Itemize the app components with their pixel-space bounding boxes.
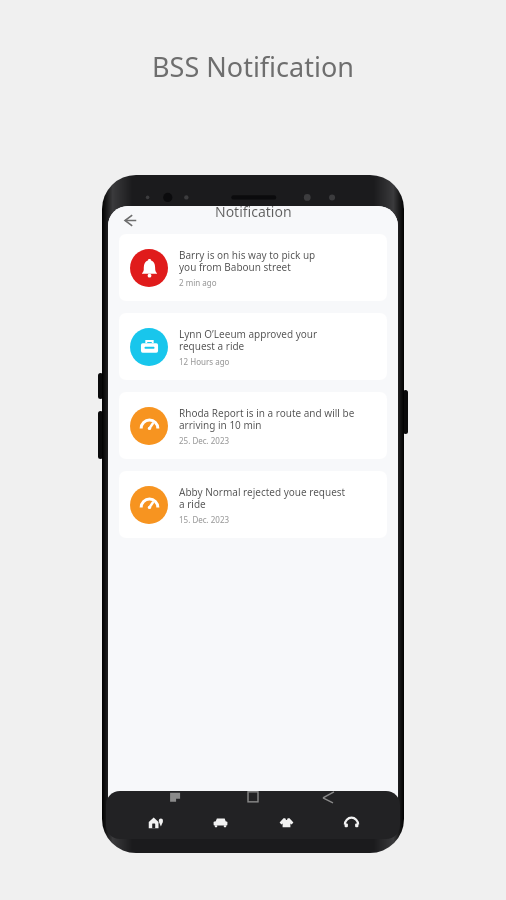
staticText: Abby Normal rejected youe request a ride [179,485,346,511]
button[interactable]: Abby Normal rejected youe request a ride [119,471,387,538]
staticText: 2 min ago [179,277,217,288]
staticText: Notification [215,206,292,221]
button[interactable]: Laundry [269,805,303,839]
button[interactable]: Lynn O’Leeum approved your request a rid… [119,313,387,380]
staticText: 15. Dec. 2023 [179,514,230,525]
staticText: BSS Notification [152,48,354,85]
button[interactable]: Support [334,805,368,839]
button[interactable]: Rides [203,805,237,839]
button[interactable]: Back [116,207,142,233]
button[interactable]: Barry is on his way to pick up you from … [119,234,387,301]
staticText: Barry is on his way to pick up you from … [179,248,316,274]
staticText: Rhoda Report is in a route and will be a… [179,406,355,432]
staticText: 25. Dec. 2023 [179,435,230,446]
button[interactable]: Home [138,805,172,839]
button[interactable]: Rhoda Report is in a route and will be a… [119,392,387,459]
staticText: 12 Hours ago [179,356,230,367]
staticText: Lynn O’Leeum approved your request a rid… [179,327,318,353]
